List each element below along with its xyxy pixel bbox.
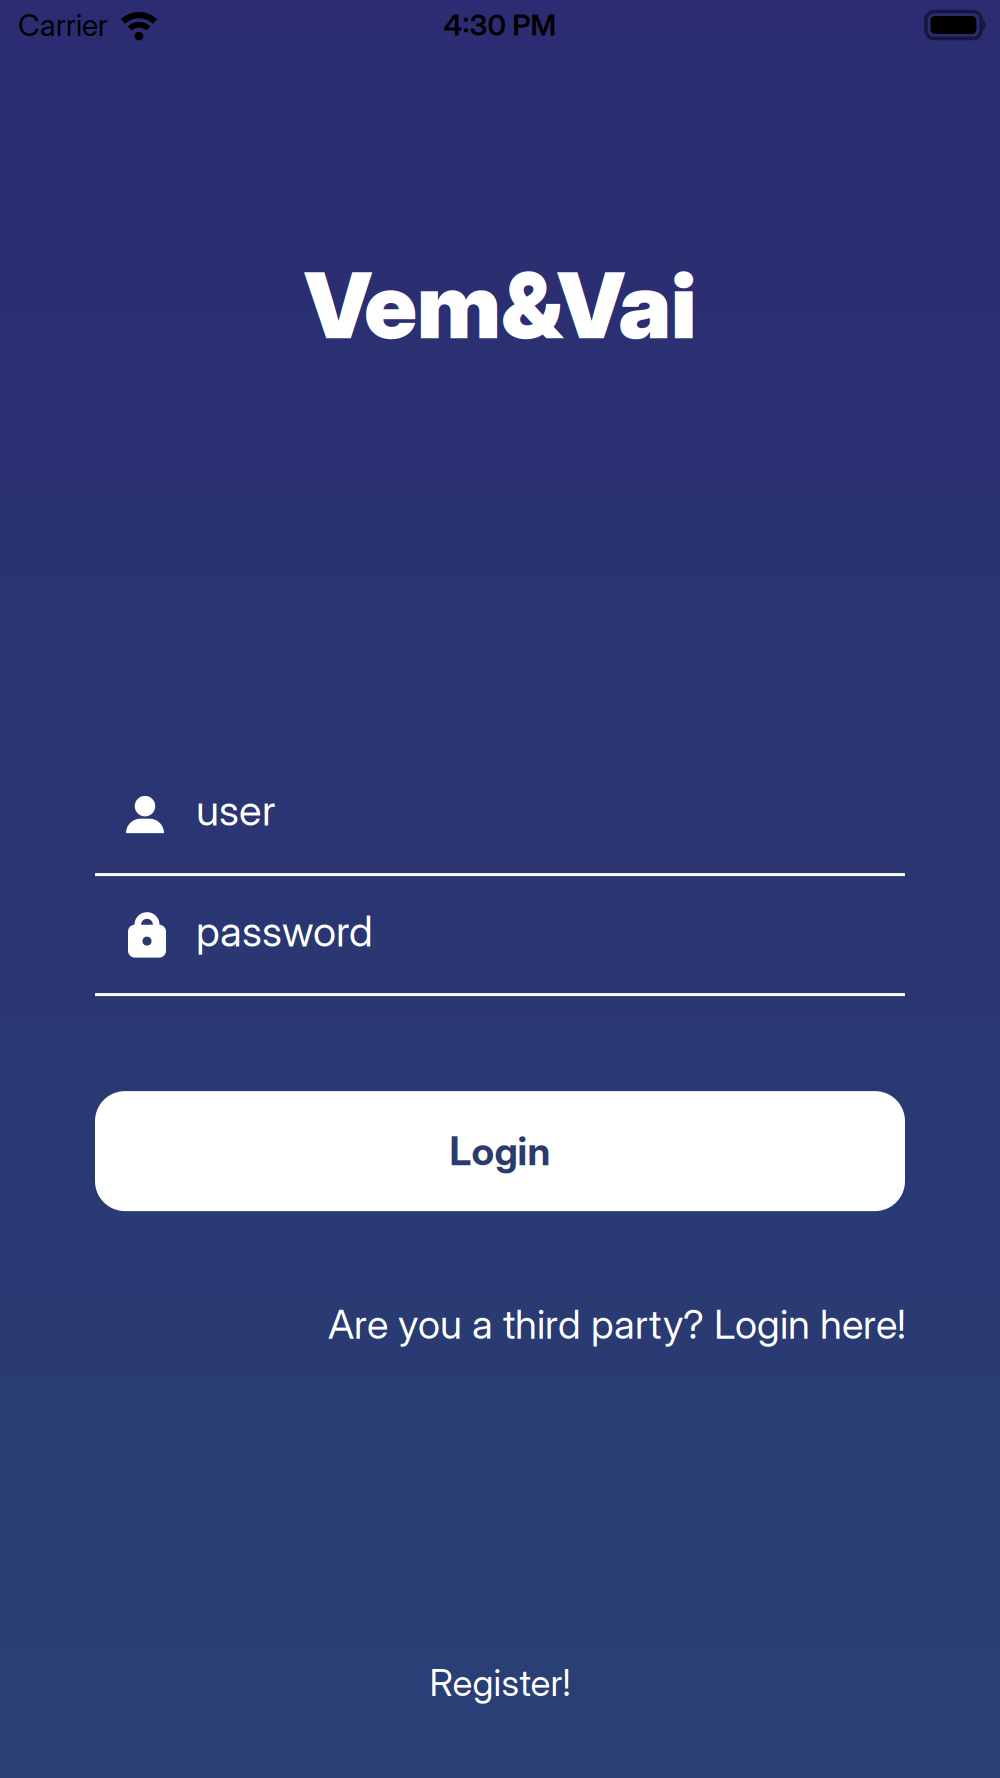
button[interactable]: password <box>0 910 1000 958</box>
button[interactable]: Login <box>95 1091 905 1211</box>
staticText: Are you a third party? Login here! <box>328 1300 906 1348</box>
staticText: Carrier <box>18 7 108 43</box>
staticText: 4:30 PM <box>443 7 556 43</box>
staticText: user <box>196 785 276 835</box>
button[interactable]: Are you a third party? Login here! <box>328 1300 906 1348</box>
button[interactable]: Register! <box>429 1660 570 1705</box>
staticText: Login <box>449 1127 550 1175</box>
button[interactable]: user <box>0 794 1000 834</box>
staticText: Vem&Vai <box>304 250 696 360</box>
staticText: Register! <box>429 1660 570 1705</box>
staticText: password <box>196 906 373 956</box>
